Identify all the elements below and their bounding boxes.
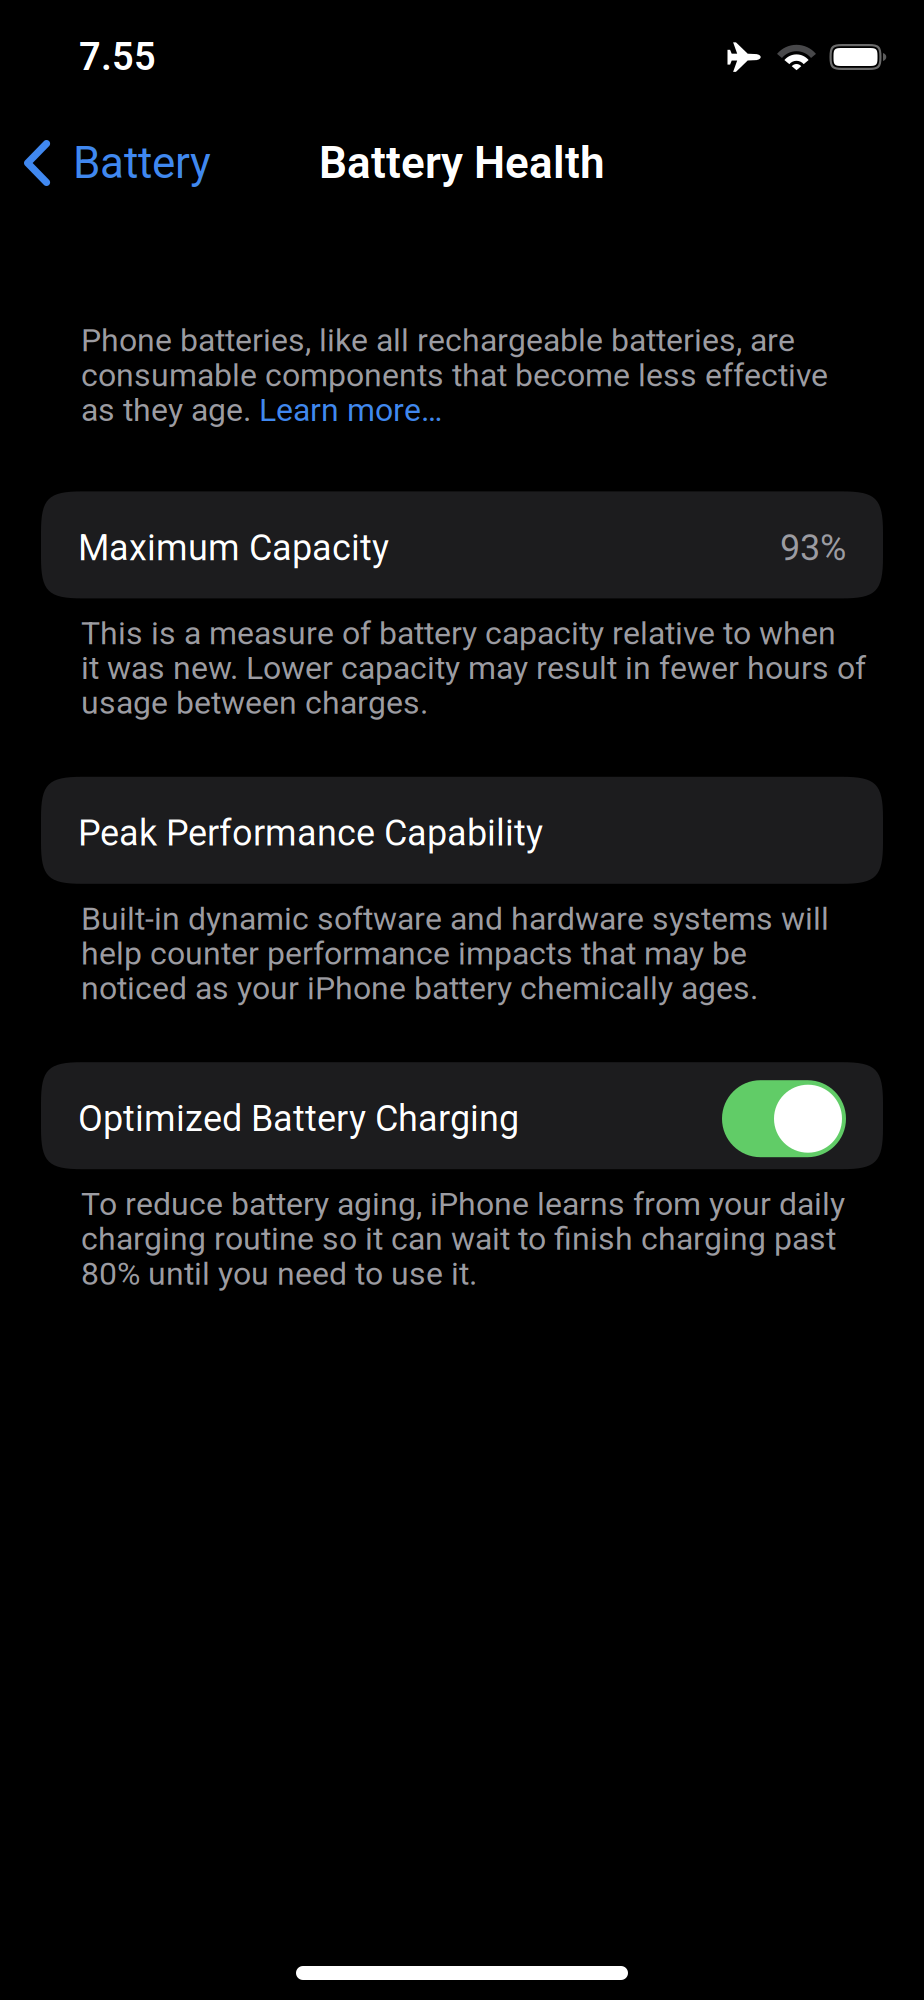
staticText: Built-in dynamic software and hardware s… — [81, 900, 829, 937]
staticText: Maximum Capacity — [78, 527, 389, 569]
staticText: as they age. — [81, 391, 259, 429]
button[interactable]: Optimized Battery Charging — [0, 1062, 924, 1169]
staticText: Battery Health — [319, 137, 605, 189]
staticText: Battery — [73, 137, 211, 189]
staticText: noticed as your iPhone battery chemicall… — [81, 969, 758, 1007]
staticText: To reduce battery aging, iPhone learns f… — [81, 1185, 845, 1223]
staticText: 93% — [780, 527, 846, 569]
staticText: 7.55 — [79, 35, 156, 79]
button[interactable]: Optimized Battery Charging, on — [722, 1080, 846, 1157]
button[interactable]: Maximum Capacity — [0, 491, 924, 598]
button[interactable]: Learn more… — [259, 391, 442, 429]
staticText: it was new. Lower capacity may result in… — [81, 649, 866, 687]
staticText: Peak Performance Capability — [78, 812, 543, 854]
staticText: 80% until you need to use it. — [81, 1255, 477, 1292]
staticText: usage between charges. — [81, 684, 428, 722]
staticText: Phone batteries, like all rechargeable b… — [81, 322, 795, 359]
button[interactable]: Battery — [0, 119, 229, 201]
staticText: Optimized Battery Charging — [78, 1098, 519, 1140]
staticText: This is a measure of battery capacity re… — [81, 614, 836, 652]
staticText: Learn more… — [259, 391, 442, 429]
staticText: charging routine so it can wait to finis… — [81, 1220, 836, 1258]
staticText: help counter performance impacts that ma… — [81, 935, 747, 972]
button[interactable]: Peak Performance Capability — [0, 777, 924, 884]
staticText: consumable components that become less e… — [81, 356, 828, 394]
